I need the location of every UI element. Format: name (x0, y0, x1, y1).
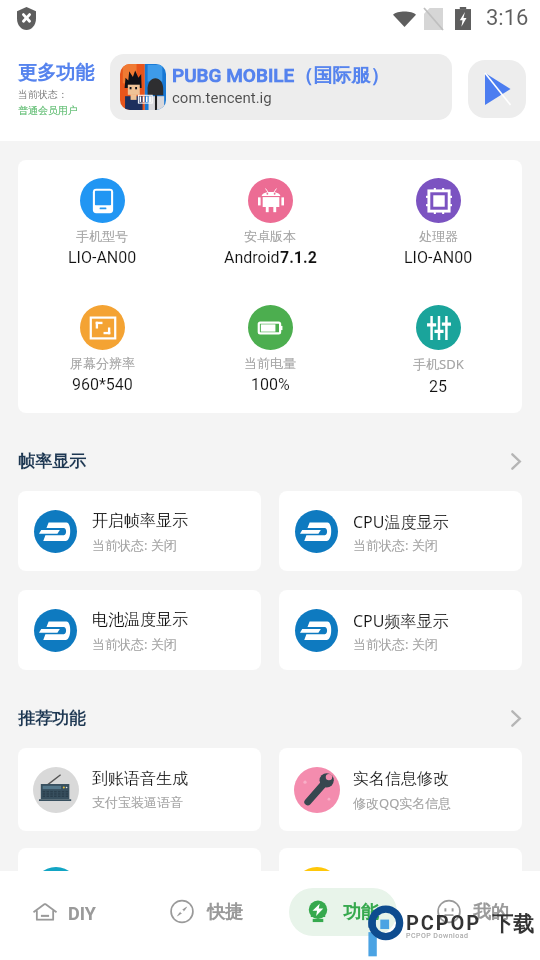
staticText: 推荐功能 (18, 708, 86, 729)
button[interactable]: 电池温度显示 (18, 590, 261, 670)
staticText: 手机型号 (76, 228, 128, 244)
staticText: CPU频率显示 (353, 610, 449, 632)
button[interactable] (153, 888, 261, 936)
staticText: 电池温度显示 (92, 610, 188, 630)
staticText: 当前状态: 关闭 (92, 635, 177, 653)
button[interactable]: 开启帧率显示 (18, 491, 261, 571)
staticText: 7.1.2 (280, 248, 317, 267)
staticText: PCPOP (406, 911, 482, 934)
staticText: 当前状态: 关闭 (353, 536, 438, 554)
button[interactable]: CPU温度显示 (279, 491, 522, 571)
staticText: LIO-AN00 (404, 248, 473, 267)
staticText: 屏幕分辨率 (70, 355, 135, 371)
staticText: PUBG MOBILE（国际服） (172, 64, 390, 88)
staticText: 当前状态: 关闭 (92, 536, 177, 554)
staticText: PCPOP Download (406, 932, 469, 940)
staticText: Android (224, 248, 280, 267)
button[interactable] (279, 848, 522, 931)
staticText: 当前电量 (244, 355, 296, 371)
button[interactable] (16, 888, 124, 936)
button[interactable] (289, 888, 397, 936)
button[interactable]: 实名信息修改 (279, 748, 522, 831)
staticText: 实名信息修改 (353, 769, 449, 789)
staticText: 支付宝装逼语音 (92, 794, 183, 810)
staticText: 修改QQ实名信息 (353, 794, 452, 812)
staticText: 处理器 (419, 228, 458, 244)
staticText: 到账语音生成 (92, 769, 188, 789)
button[interactable]: CPU频率显示 (279, 590, 522, 670)
staticText: 帧率显示 (18, 451, 86, 472)
staticText: 普通会员用户 (18, 104, 78, 117)
button[interactable]: 帧率显示 (18, 450, 522, 472)
button[interactable]: 到账语音生成 (18, 748, 261, 831)
staticText: com.tencent.ig (172, 89, 272, 107)
staticText: 当前状态： (18, 88, 68, 101)
staticText: 我的 (473, 901, 509, 924)
staticText: 开启帧率显示 (92, 511, 188, 531)
staticText: DIY (68, 903, 96, 924)
staticText: 3:16 (486, 5, 529, 31)
staticText: 安卓版本 (244, 228, 296, 244)
staticText: 当前状态: 关闭 (353, 635, 438, 653)
staticText: CPU温度显示 (353, 511, 449, 533)
staticText: 快捷 (207, 901, 243, 924)
staticText: 手机SDK (413, 355, 464, 373)
button[interactable]: Open in Play Store (468, 60, 526, 118)
staticText: 25 (429, 377, 447, 396)
button[interactable]: PUBG MOBILE（国际服） (110, 54, 452, 120)
button[interactable] (18, 848, 261, 931)
button[interactable]: 推荐功能 (18, 707, 522, 729)
staticText: 下载 (492, 911, 534, 937)
staticText: 960*540 (72, 375, 133, 394)
staticText: 100% (251, 375, 290, 394)
button[interactable] (420, 888, 528, 936)
staticText: LIO-AN00 (68, 248, 137, 267)
staticText: 更多功能 (18, 61, 94, 85)
staticText: 功能 (343, 901, 379, 924)
